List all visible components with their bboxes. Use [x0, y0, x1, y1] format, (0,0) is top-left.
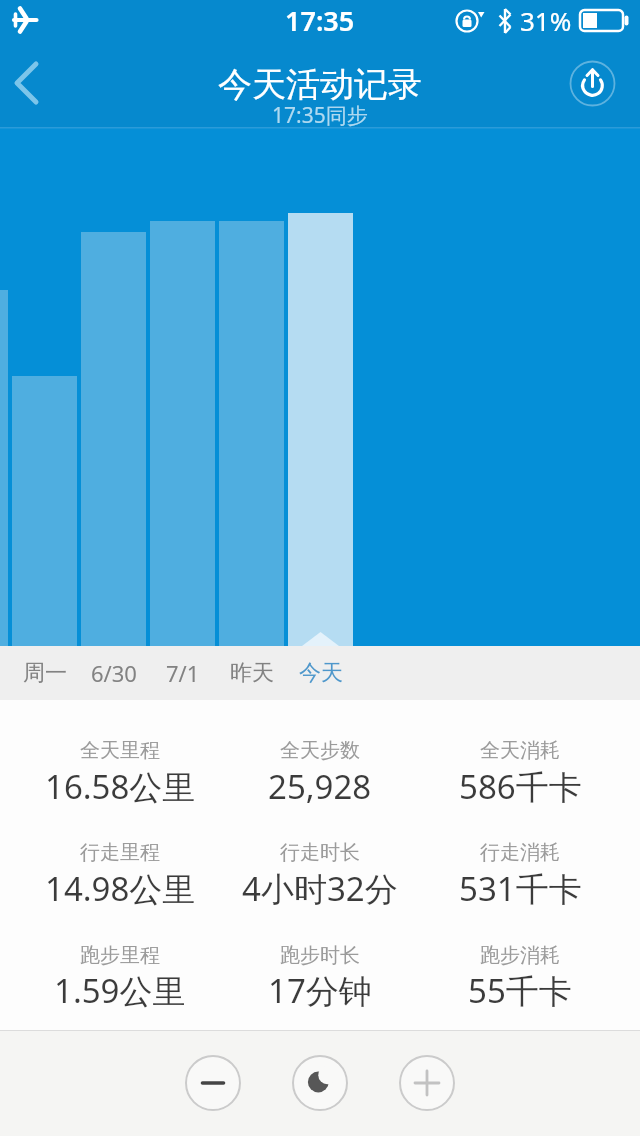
button[interactable]: 6/30: [81, 646, 147, 700]
staticText: 全天步数: [280, 738, 360, 763]
button[interactable]: [292, 1055, 348, 1111]
staticText: 16.58公里: [45, 764, 196, 809]
staticText: 17:35同步: [272, 101, 368, 130]
staticText: 行走消耗: [480, 840, 560, 865]
staticText: 跑步里程: [80, 943, 160, 968]
staticText: 7/1: [166, 658, 200, 688]
staticText: 昨天: [230, 659, 274, 687]
button[interactable]: 周一: [12, 646, 78, 700]
button[interactable]: [570, 61, 615, 106]
button[interactable]: [399, 1055, 455, 1111]
staticText: 今天: [299, 659, 343, 687]
staticText: 31%: [520, 3, 572, 38]
staticText: 今天活动记录: [218, 63, 422, 106]
staticText: 行走里程: [80, 840, 160, 865]
staticText: 6/30: [91, 658, 137, 688]
staticText: 1.59公里: [54, 968, 186, 1013]
button[interactable]: [0, 40, 60, 127]
button[interactable]: 7/1: [150, 646, 216, 700]
button[interactable]: [185, 1055, 241, 1111]
staticText: 25,928: [268, 764, 372, 809]
staticText: 17分钟: [268, 968, 372, 1013]
staticText: 55千卡: [468, 968, 572, 1013]
staticText: 531千卡: [459, 866, 582, 911]
staticText: 跑步时长: [280, 943, 360, 968]
staticText: 行走时长: [280, 840, 360, 865]
button[interactable]: 今天: [288, 646, 354, 700]
staticText: 周一: [23, 659, 67, 687]
button[interactable]: 昨天: [219, 646, 285, 700]
staticText: 4小时32分: [242, 866, 398, 911]
staticText: 14.98公里: [45, 866, 196, 911]
staticText: 17:35: [285, 2, 355, 39]
staticText: 全天消耗: [480, 738, 560, 763]
staticText: 586千卡: [459, 764, 582, 809]
staticText: 跑步消耗: [480, 943, 560, 968]
staticText: 全天里程: [80, 738, 160, 763]
